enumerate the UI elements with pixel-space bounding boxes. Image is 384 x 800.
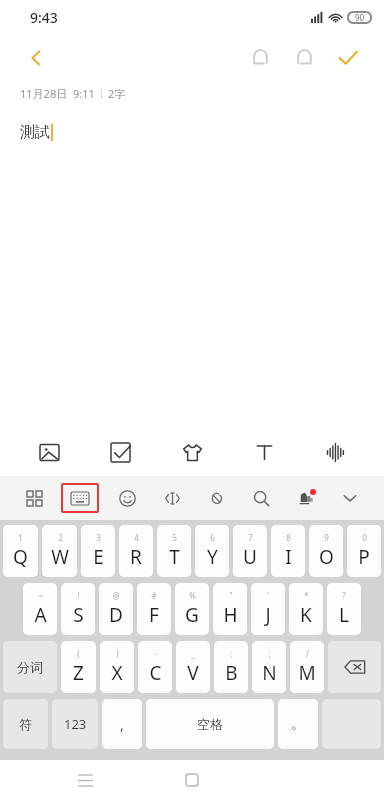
button[interactable]: ! (61, 583, 95, 635)
staticText: O (319, 544, 334, 570)
staticText: R (130, 544, 142, 570)
button[interactable]: 。 (278, 699, 318, 749)
staticText: 0 (362, 532, 367, 543)
staticText: 2字 (108, 86, 126, 101)
staticText: Z (73, 660, 84, 686)
staticText: X (111, 660, 123, 686)
staticText: ~ (38, 590, 43, 601)
staticText: / (306, 648, 309, 659)
button[interactable]: Redo (282, 36, 326, 80)
button[interactable]: Done (326, 36, 370, 80)
staticText: 90 (355, 12, 365, 23)
staticText: U (243, 544, 257, 570)
button[interactable]: - (138, 641, 172, 693)
button[interactable]: # (137, 583, 171, 635)
button[interactable]: % (175, 583, 209, 635)
button[interactable]: : (214, 641, 248, 693)
button[interactable]: 分词 (3, 641, 57, 693)
button[interactable]: * (289, 583, 323, 635)
button[interactable]: Text format (241, 429, 287, 475)
button[interactable]: Keyboard (61, 483, 99, 513)
button[interactable]: Undo (238, 36, 282, 80)
button[interactable]: 3 (81, 525, 115, 577)
staticText: Q (13, 544, 28, 570)
staticText: ; (268, 648, 271, 659)
staticText: L (339, 602, 349, 628)
button[interactable]: ~ (23, 583, 57, 635)
button[interactable]: 6 (195, 525, 229, 577)
button[interactable]: / (290, 641, 324, 693)
staticText: 123 (64, 715, 87, 733)
button[interactable]: @ (99, 583, 133, 635)
button[interactable]: " (213, 583, 247, 635)
button[interactable]: 123 (52, 699, 98, 749)
button[interactable]: Theme (289, 481, 323, 515)
button[interactable]: 5 (157, 525, 191, 577)
staticText: N (262, 660, 277, 686)
button[interactable]: 1 (3, 525, 38, 577)
staticText: G (185, 602, 199, 628)
button[interactable]: 7 (233, 525, 267, 577)
staticText: * (304, 590, 309, 601)
staticText: ! (77, 590, 80, 601)
staticText: ? (342, 590, 346, 601)
staticText: 1 (18, 532, 23, 543)
button[interactable]: ? (327, 583, 361, 635)
button[interactable]: _ (176, 641, 210, 693)
button[interactable]: ' (251, 583, 285, 635)
staticText: Y (207, 544, 218, 570)
staticText: 4 (134, 532, 139, 543)
button[interactable]: Hide keyboard (333, 481, 367, 515)
staticText: H (223, 602, 238, 628)
button[interactable]: ; (252, 641, 286, 693)
button[interactable]: 2 (42, 525, 77, 577)
button[interactable]: Voice (312, 429, 358, 475)
button[interactable]: 空格 (146, 699, 274, 749)
button[interactable]: , (102, 699, 142, 749)
staticText: 分词 (17, 659, 43, 675)
staticText: M (298, 660, 316, 686)
staticText: - (154, 648, 157, 659)
button[interactable]: Checklist (97, 429, 143, 475)
button[interactable]: 8 (271, 525, 305, 577)
button[interactable]: Style (169, 429, 215, 475)
staticText: # (151, 590, 157, 601)
staticText: E (93, 544, 104, 570)
button[interactable]: Search (244, 481, 278, 515)
button[interactable]: Clipboard (199, 481, 233, 515)
button[interactable]: ) (100, 641, 134, 693)
button[interactable]: Backspace (328, 641, 381, 693)
staticText: 測試 (20, 123, 50, 142)
staticText: " (229, 590, 233, 601)
button[interactable]: Emoji (110, 481, 144, 515)
staticText: 9 (324, 532, 329, 543)
button[interactable]: Insert image (26, 429, 72, 475)
staticText: 9:43 (30, 8, 58, 27)
button[interactable]: Back (16, 38, 56, 78)
button[interactable]: 9 (309, 525, 343, 577)
staticText: K (300, 602, 312, 628)
staticText: 6 (210, 532, 215, 543)
staticText: , (120, 715, 124, 734)
button[interactable]: ( (61, 641, 96, 693)
staticText: 8 (286, 532, 291, 543)
staticText: 7 (248, 532, 253, 543)
staticText: P (358, 544, 370, 570)
staticText: F (149, 602, 159, 628)
button[interactable]: 4 (119, 525, 153, 577)
button[interactable]: Apps (17, 481, 51, 515)
button[interactable]: 符 (3, 699, 48, 749)
button[interactable]: Move cursor (155, 481, 189, 515)
staticText: C (149, 660, 162, 686)
staticText: T (169, 544, 180, 570)
button[interactable]: Recents (63, 760, 107, 800)
staticText: 5 (172, 532, 177, 543)
staticText: S (73, 602, 84, 628)
staticText: ( (77, 648, 80, 659)
button[interactable]: 0 (347, 525, 381, 577)
staticText: ) (116, 648, 119, 659)
button[interactable]: Home (170, 760, 214, 800)
staticText: W (51, 544, 69, 570)
staticText: A (34, 602, 47, 628)
